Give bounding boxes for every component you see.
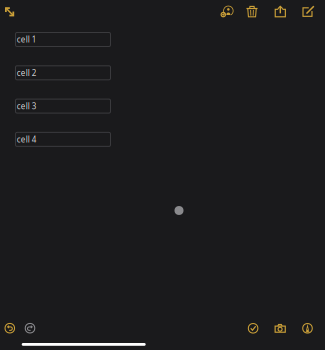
- button[interactable]: Redo: [19, 317, 41, 339]
- button[interactable]: Zoom to Fit: [0, 1, 21, 23]
- button[interactable]: Add People: [216, 1, 238, 23]
- staticText: cell 3: [17, 101, 37, 111]
- button[interactable]: Done: [242, 317, 264, 339]
- button[interactable]: cell 3: [15, 99, 110, 113]
- staticText: cell 1: [17, 34, 37, 45]
- button[interactable]: Markup: [296, 317, 318, 339]
- button[interactable]: cell 1: [15, 32, 110, 46]
- button[interactable]: Insert Photo: [269, 317, 291, 339]
- button[interactable]: Undo: [0, 317, 21, 339]
- button[interactable]: cell 2: [15, 66, 110, 80]
- button[interactable]: Share: [269, 0, 291, 22]
- staticText: cell 2: [17, 67, 37, 78]
- button[interactable]: cell 4: [15, 132, 110, 146]
- button[interactable]: Delete: [241, 0, 263, 22]
- button[interactable]: New Note: [297, 0, 319, 22]
- staticText: cell 4: [17, 134, 37, 145]
